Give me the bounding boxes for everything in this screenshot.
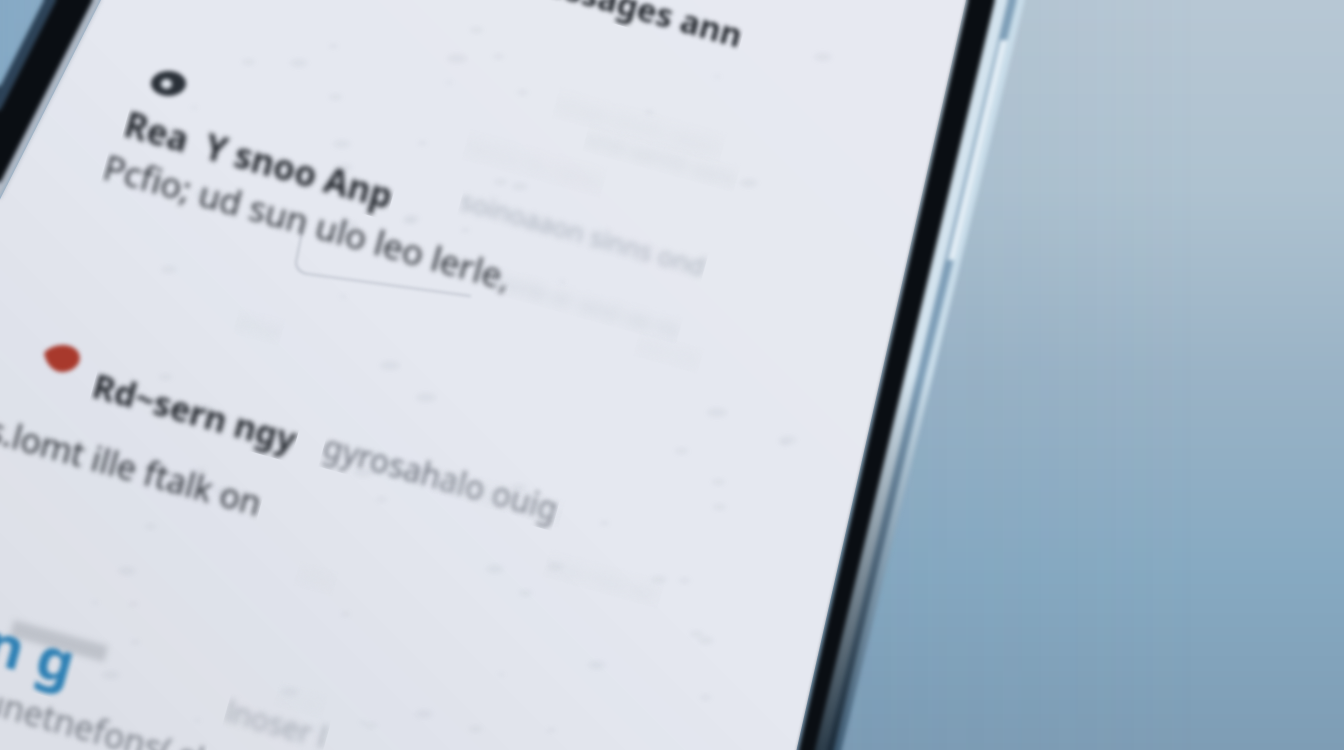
- staticText: mn g: [0, 586, 85, 701]
- button[interactable]: Avatar: [41, 343, 81, 373]
- staticText: gyrosahalo ouig: [318, 424, 563, 531]
- staticText: Rd~sern ngy: [88, 362, 302, 462]
- staticText: aunetnefons( sl: [0, 672, 210, 750]
- staticText: sonle er onsl oe ns: [490, 264, 684, 344]
- button[interactable]: Open link: [0, 590, 133, 711]
- button[interactable]: Conversation: Rd sern ngy: [0, 330, 695, 642]
- staticText: Rea Y snoo Anp: [119, 100, 399, 220]
- staticText: Pcfio; ud sun ulo leo lerle,: [98, 143, 518, 302]
- staticText: eon ters ono: [432, 464, 566, 528]
- button[interactable]: Conversation: Rea Y snoo Anp: [85, 56, 795, 368]
- button[interactable]: Account: [151, 71, 186, 96]
- staticText: soinoaaon sinns ond: [457, 182, 710, 283]
- button[interactable]: Conversation: aunetnefons: [0, 580, 655, 750]
- staticText: Messages ann: [512, 0, 749, 58]
- staticText: eas.lomt ille ftalk on: [0, 396, 267, 526]
- staticText: lnoser l: [221, 690, 332, 750]
